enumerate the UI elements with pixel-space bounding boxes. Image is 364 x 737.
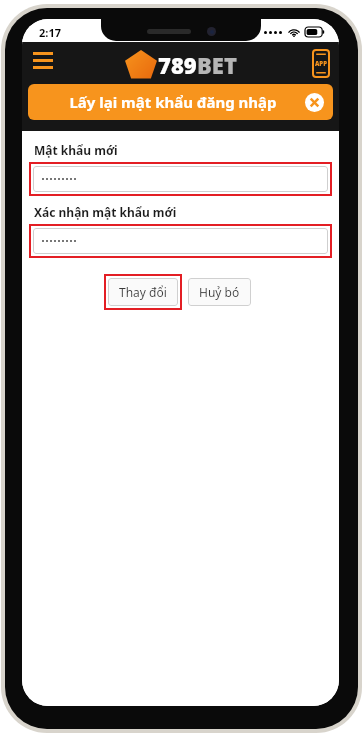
staticText: Huỷ bó: [199, 284, 240, 300]
staticText: Lấy lại mật khẩu đăng nhập: [69, 92, 277, 112]
staticText: Xác nhận mật khẩu mới: [34, 204, 177, 220]
button[interactable]: 789: [124, 50, 237, 80]
staticText: 2:17: [39, 25, 61, 40]
button[interactable]: Huỷ bó: [188, 278, 251, 306]
button[interactable]: Thay đổi: [108, 278, 178, 306]
staticText: 789: [158, 50, 197, 80]
staticText: BET: [197, 50, 237, 80]
button[interactable]: App download: [313, 50, 329, 77]
staticText: Thay đổi: [119, 284, 167, 300]
button[interactable]: Close: [305, 93, 324, 112]
staticText: APP: [315, 60, 327, 68]
button[interactable]: [33, 166, 328, 192]
button[interactable]: [33, 228, 328, 254]
staticText: Mật khẩu mới: [34, 142, 118, 158]
button[interactable]: Menu: [33, 52, 55, 74]
